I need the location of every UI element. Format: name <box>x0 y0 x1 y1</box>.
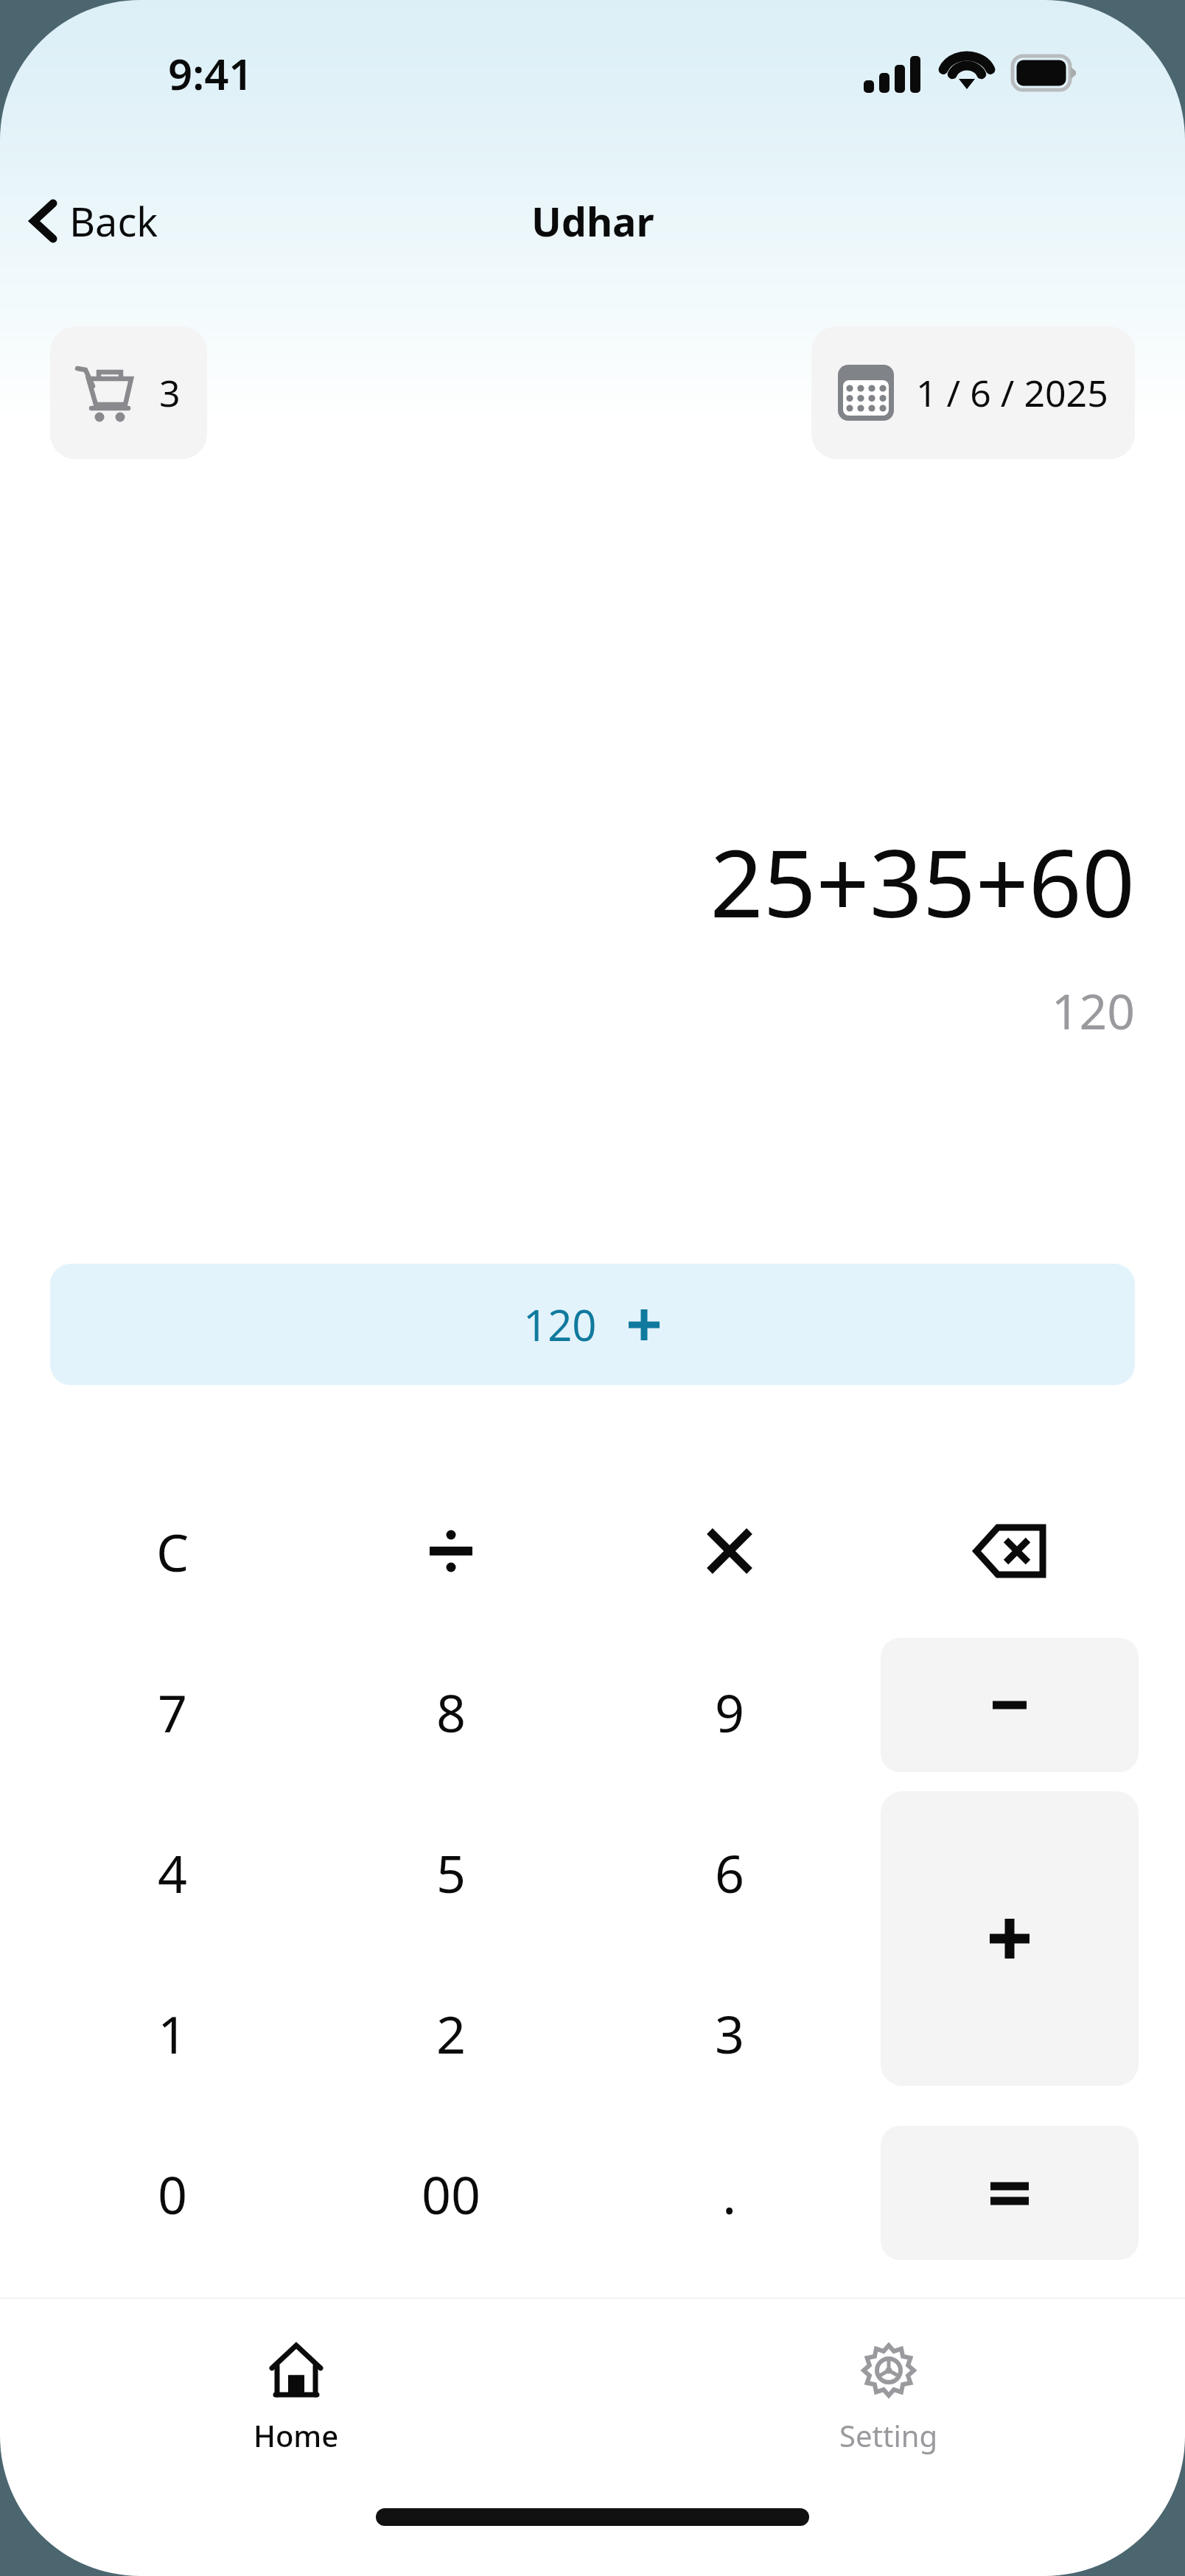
staticText: 4 <box>158 1838 188 1908</box>
button[interactable]: . <box>619 2120 840 2267</box>
staticText: Back <box>69 194 158 248</box>
button[interactable]: 2 <box>340 1959 562 2107</box>
button[interactable]: Settings <box>592 2328 1185 2468</box>
button[interactable]: 3 <box>619 1959 840 2107</box>
staticText: 3 <box>159 368 181 418</box>
staticText: 1 <box>158 1998 188 2068</box>
staticText: 0 <box>158 2159 188 2229</box>
button[interactable]: Divide <box>340 1477 562 1625</box>
staticText: 1 / 6 / 2025 <box>916 368 1108 418</box>
button[interactable]: 4 <box>62 1799 283 1946</box>
staticText: 00 <box>422 2159 481 2229</box>
other: Date <box>838 365 894 421</box>
other: Home <box>268 2342 325 2399</box>
staticText: C <box>156 1516 189 1586</box>
button[interactable]: Backspace <box>899 1477 1120 1625</box>
staticText: 5 <box>436 1838 466 1908</box>
button[interactable]: Home <box>0 2328 592 2468</box>
button[interactable]: 8 <box>340 1638 562 1785</box>
staticText: 9 <box>715 1677 745 1747</box>
button[interactable]: 00 <box>340 2120 562 2267</box>
button[interactable]: 9 <box>619 1638 840 1785</box>
button[interactable]: 6 <box>619 1799 840 1946</box>
staticText: 25+35+60 <box>710 818 1135 945</box>
staticText: 9:41 <box>168 44 254 102</box>
staticText: Udhar <box>531 194 654 248</box>
staticText: Home <box>254 2415 339 2455</box>
staticText: 7 <box>158 1677 188 1747</box>
button[interactable]: C <box>62 1477 283 1625</box>
staticText: 6 <box>715 1838 745 1908</box>
button[interactable] <box>881 1638 1139 1772</box>
button[interactable] <box>881 1791 1139 2086</box>
staticText: . <box>722 2157 737 2230</box>
other: Cart <box>77 364 139 421</box>
button[interactable]: 5 <box>340 1799 562 1946</box>
button[interactable]: Date <box>811 326 1135 459</box>
button[interactable]: Cart <box>50 326 207 459</box>
staticText: Setting <box>839 2415 938 2455</box>
button[interactable]: 1 <box>62 1959 283 2107</box>
button[interactable]: Back <box>22 186 167 256</box>
button[interactable]: 120 <box>50 1264 1135 1385</box>
button[interactable]: 7 <box>62 1638 283 1785</box>
button[interactable]: 0 <box>62 2120 283 2267</box>
staticText: 120 <box>523 1295 597 1354</box>
button[interactable] <box>881 2126 1139 2260</box>
staticText: 3 <box>715 1998 745 2068</box>
button[interactable]: Multiply <box>619 1477 840 1625</box>
staticText: 8 <box>436 1677 466 1747</box>
staticText: 120 <box>1051 977 1135 1043</box>
staticText: 2 <box>436 1998 466 2068</box>
other: Settings <box>860 2342 917 2399</box>
